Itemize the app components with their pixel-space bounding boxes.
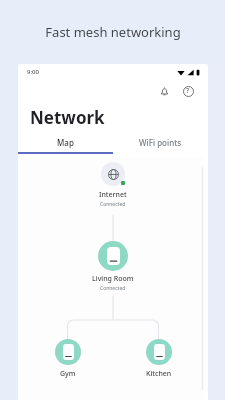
button[interactable]: Internet (99, 161, 127, 208)
staticText: Internet (99, 190, 127, 200)
staticText: Map (57, 137, 74, 148)
staticText: ? (186, 86, 190, 96)
staticText: 9:00 (27, 68, 39, 76)
button[interactable]: Notifications (154, 81, 174, 101)
button[interactable]: Gym (55, 339, 81, 379)
button[interactable]: Map (18, 132, 113, 152)
staticText: Living Room (92, 274, 134, 284)
staticText: Network (30, 106, 105, 129)
staticText: Connected (100, 285, 126, 292)
staticText: Fast mesh networking (45, 23, 181, 41)
staticText: WiFi points (139, 137, 182, 148)
button[interactable]: Living Room (92, 241, 134, 292)
staticText: Gym (60, 369, 76, 379)
button[interactable]: Help (178, 81, 198, 101)
staticText: Connected (100, 201, 126, 208)
staticText: Kitchen (146, 369, 172, 379)
button[interactable]: Kitchen (146, 339, 172, 379)
button[interactable]: WiFi points (113, 132, 208, 152)
